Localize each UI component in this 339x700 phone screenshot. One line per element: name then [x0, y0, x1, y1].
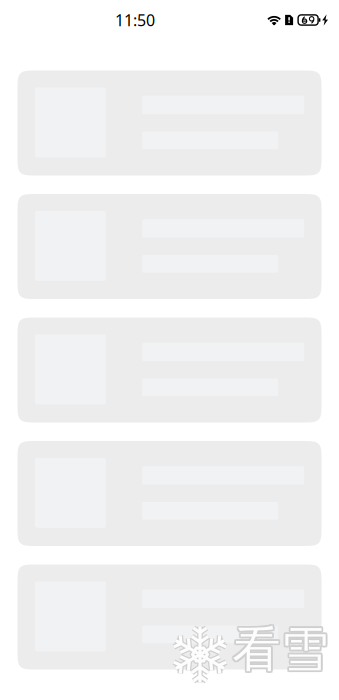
staticText: 11:50	[115, 9, 155, 31]
staticText: 看雪	[232, 622, 328, 681]
staticText: 看雪	[231, 620, 327, 679]
staticText: 看雪	[234, 618, 330, 677]
staticText: 看雪	[234, 620, 330, 679]
button[interactable]: Loading item	[17, 70, 321, 175]
staticText: 看雪	[231, 621, 327, 680]
staticText: 看雪	[232, 620, 328, 679]
button[interactable]: Loading item	[17, 564, 321, 669]
button[interactable]: Loading item	[17, 194, 321, 299]
button[interactable]: Loading item	[17, 441, 321, 546]
button[interactable]: Loading item	[17, 317, 321, 422]
staticText: 看雪	[231, 618, 327, 677]
staticText: 看雪	[234, 621, 330, 680]
staticText: 看雪	[232, 618, 328, 677]
